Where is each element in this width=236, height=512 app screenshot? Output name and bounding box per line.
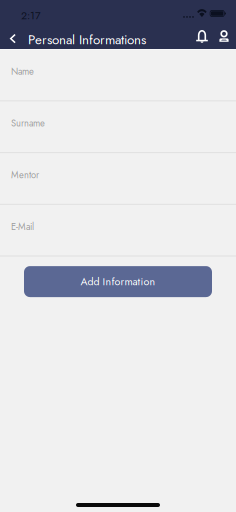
button[interactable]: Back <box>3 24 22 49</box>
button[interactable]: Notifications <box>191 24 213 49</box>
staticText: Surname <box>11 116 45 130</box>
staticText: E-Mail <box>11 220 34 233</box>
button[interactable]: Surname <box>0 101 236 153</box>
button[interactable]: Add Information <box>24 266 212 297</box>
button[interactable]: Name <box>0 50 236 101</box>
staticText: Name <box>11 65 34 78</box>
button[interactable]: E-Mail <box>0 205 236 256</box>
staticText: Mentor <box>11 168 39 182</box>
button[interactable]: Account <box>213 24 235 49</box>
staticText: Add Information <box>80 274 155 289</box>
button[interactable]: Mentor <box>0 153 236 205</box>
staticText: Personal Informations <box>28 30 146 49</box>
staticText: 2:17 <box>21 8 41 23</box>
